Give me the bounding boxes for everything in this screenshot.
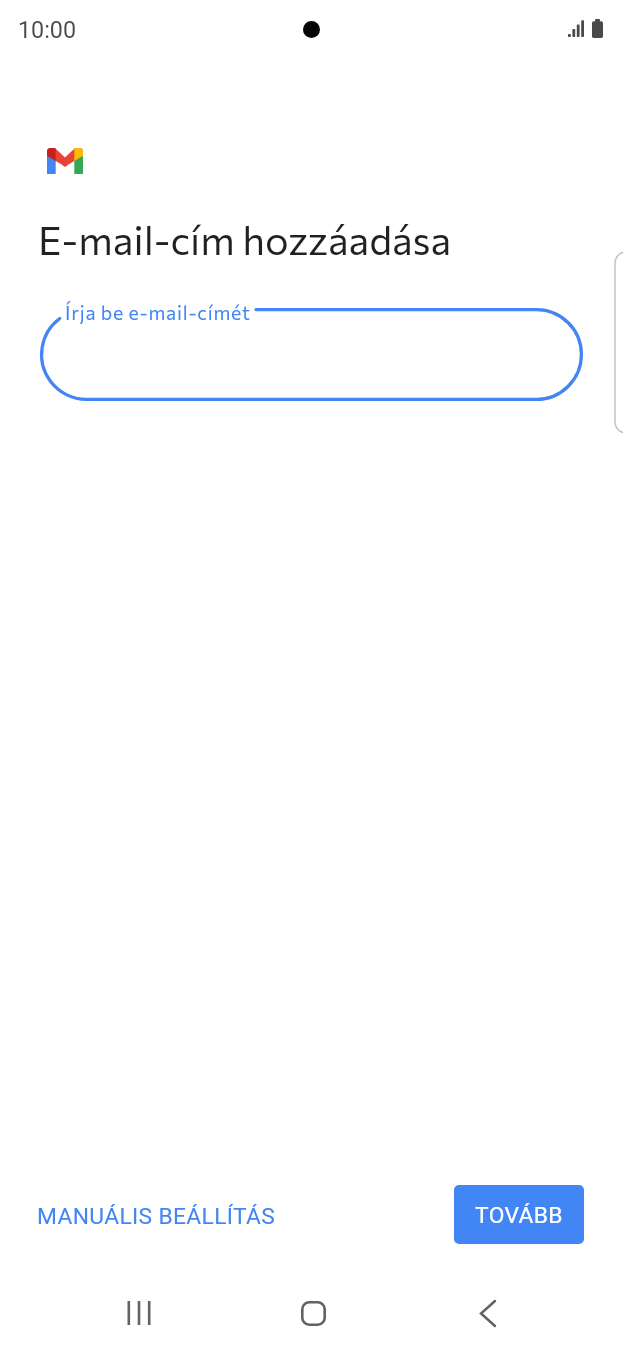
- staticText: Írja be e-mail-címét: [65, 300, 251, 324]
- button[interactable]: Back: [453, 1278, 523, 1348]
- button[interactable]: Home: [278, 1278, 348, 1348]
- staticText: 10:00: [18, 16, 77, 43]
- staticText: E-mail-cím hozzáadása: [38, 215, 452, 263]
- staticText: MANUÁLIS BEÁLLÍTÁS: [37, 1203, 276, 1230]
- button[interactable]: TOVÁBB: [454, 1185, 584, 1244]
- button[interactable]: Recent apps: [104, 1278, 174, 1348]
- staticText: TOVÁBB: [475, 1202, 563, 1229]
- button[interactable]: MANUÁLIS BEÁLLÍTÁS: [21, 1192, 292, 1241]
